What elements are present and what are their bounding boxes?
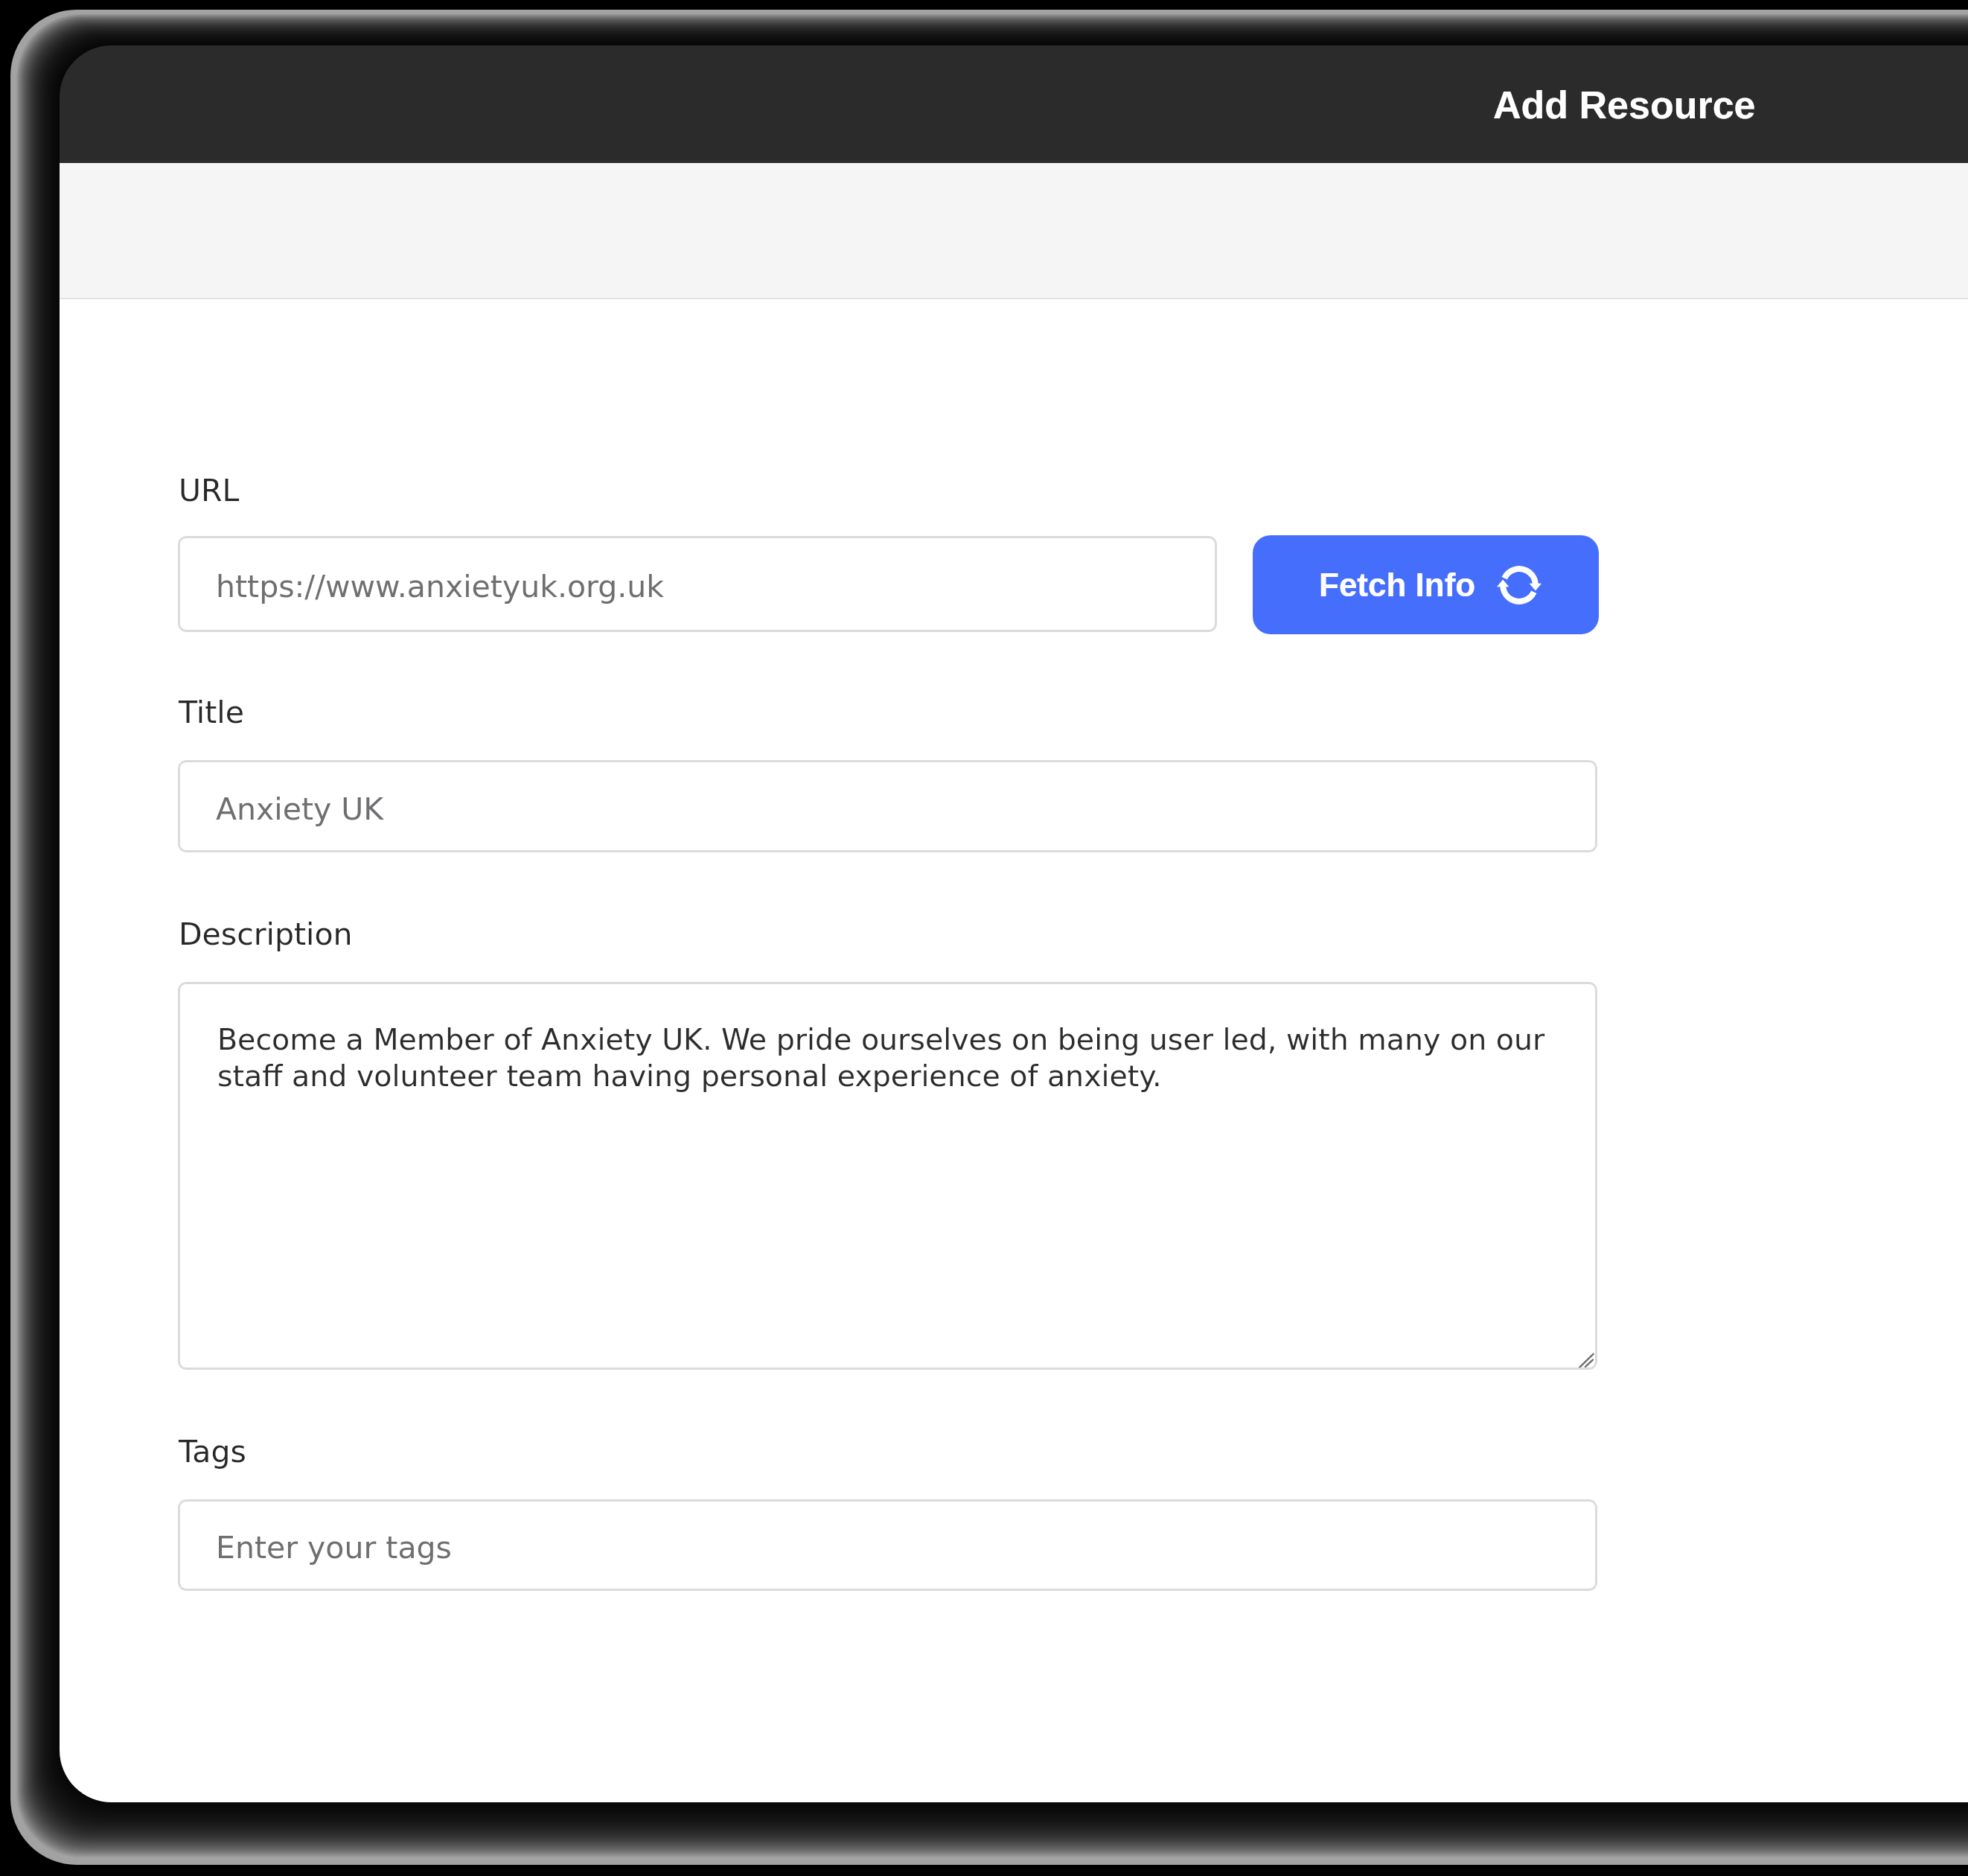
staticText: https://www.anxietyuk.org.uk [216,569,664,604]
staticText: Fetch Info [1319,567,1476,603]
staticText: Tags [179,1434,246,1470]
staticText: Add Resource [1493,83,1756,127]
staticText: URL [179,473,240,508]
staticText: Enter your tags [216,1530,452,1566]
staticText: Become a Member of Anxiety UK. We pride … [217,1022,1565,1093]
button[interactable]: Become a Member of Anxiety UK. We pride … [178,982,1597,1370]
button[interactable]: Anxiety UK [178,760,1597,852]
button[interactable]: https://www.anxietyuk.org.uk [178,536,1217,632]
button[interactable]: Enter your tags [178,1499,1597,1591]
staticText: Anxiety UK [216,791,384,827]
staticText: Description [179,916,353,952]
button[interactable]: Fetch Info [1253,535,1599,634]
staticText: Title [179,695,244,730]
other: Refresh [1495,561,1543,609]
